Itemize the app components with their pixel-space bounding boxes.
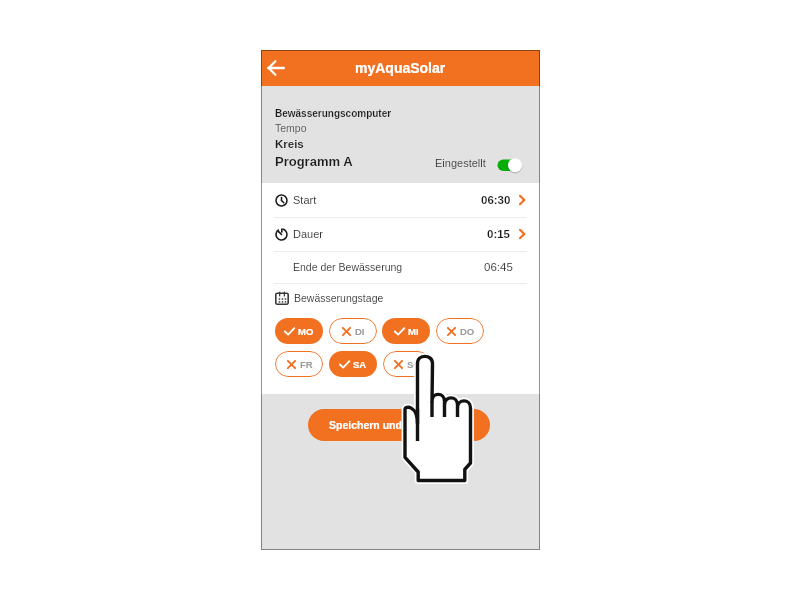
button[interactable]: MO <box>275 318 323 344</box>
button[interactable]: Speichern und beenden <box>308 409 490 441</box>
button[interactable]: Program enabled toggle <box>493 154 523 175</box>
staticText: Programm A <box>275 154 353 169</box>
staticText: 06:45 <box>484 261 513 274</box>
button[interactable]: Dauer <box>261 217 540 251</box>
staticText: Speichern und beenden <box>329 419 449 431</box>
staticText: myAquaSolar <box>355 60 446 76</box>
staticText: Kreis <box>275 138 304 151</box>
button[interactable]: DO <box>436 318 484 344</box>
staticText: DI <box>355 326 365 337</box>
staticText: Tempo <box>275 122 307 134</box>
staticText: MI <box>408 326 419 337</box>
button[interactable]: DI <box>329 318 377 344</box>
button[interactable]: Start <box>261 183 540 217</box>
staticText: Eingestellt <box>435 157 486 169</box>
staticText: Bewässerungstage <box>294 292 384 304</box>
staticText: SA <box>353 359 367 370</box>
button[interactable]: SA <box>329 351 377 377</box>
staticText: Start <box>293 194 317 206</box>
staticText: Bewässerungscomputer <box>275 108 392 119</box>
staticText: 0:15 <box>487 228 511 241</box>
staticText: MO <box>298 326 314 337</box>
staticText: Ende der Bewässerung <box>293 261 403 273</box>
staticText: DO <box>460 326 475 337</box>
button[interactable]: Back <box>263 55 289 81</box>
button[interactable]: FR <box>275 351 323 377</box>
button[interactable]: SO <box>383 351 431 377</box>
staticText: 06:30 <box>481 194 511 207</box>
staticText: Dauer <box>293 228 323 240</box>
button[interactable]: MI <box>382 318 430 344</box>
staticText: SO <box>407 359 421 370</box>
staticText: FR <box>300 359 313 370</box>
